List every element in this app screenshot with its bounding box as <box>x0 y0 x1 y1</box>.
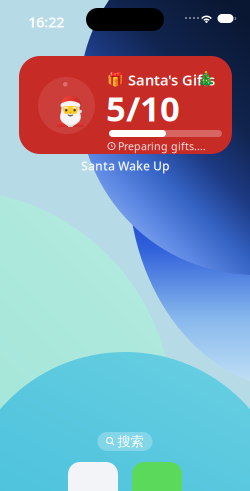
staticText: 🎁 <box>107 72 124 87</box>
staticText: 🎄 <box>197 71 215 88</box>
staticText: 🎅 <box>53 95 88 127</box>
button[interactable]: App <box>68 462 118 491</box>
button[interactable]: 搜索 <box>97 432 152 451</box>
staticText: 5/10 <box>106 85 180 131</box>
button[interactable]: Messages <box>132 462 182 491</box>
button[interactable]: 🎅 <box>19 56 232 154</box>
staticText: Santa Wake Up <box>81 158 169 174</box>
staticText: 16:22 <box>28 12 64 31</box>
staticText: Preparing gifts.... <box>118 139 206 153</box>
staticText: 搜索 <box>117 433 143 450</box>
staticText: Santa's Gifts <box>128 70 215 89</box>
